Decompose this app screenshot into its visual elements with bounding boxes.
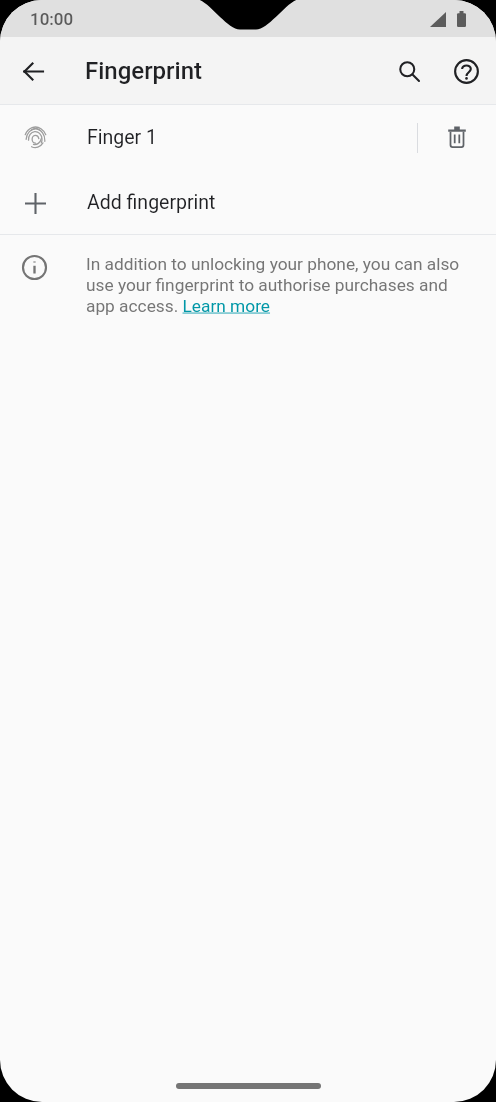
staticText: Add fingerprint bbox=[87, 191, 216, 214]
button[interactable]: Search bbox=[387, 49, 431, 93]
button[interactable]: Add fingerprint bbox=[0, 170, 496, 235]
staticText: Fingerprint bbox=[85, 57, 203, 85]
staticText: In addition to unlocking your phone, you… bbox=[86, 254, 460, 316]
button[interactable]: Help bbox=[444, 49, 488, 93]
button[interactable]: Finger 1 bbox=[0, 105, 496, 170]
staticText: Finger 1 bbox=[87, 126, 157, 149]
button[interactable]: Delete fingerprint bbox=[418, 105, 496, 170]
staticText: 10:00 bbox=[30, 9, 74, 29]
button[interactable]: Back bbox=[13, 51, 53, 91]
